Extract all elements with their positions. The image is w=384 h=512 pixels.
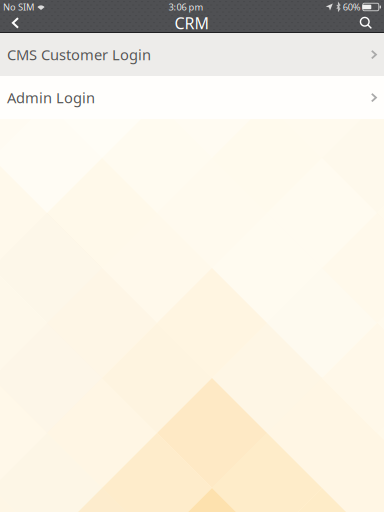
staticText: 3:06 pm xyxy=(168,1,203,13)
staticText: CRM xyxy=(174,12,209,34)
button[interactable]: Search xyxy=(348,14,384,32)
staticText: Admin Login xyxy=(7,88,95,107)
button[interactable]: Back xyxy=(0,14,31,32)
staticText: No SIM xyxy=(3,1,34,13)
button[interactable]: Admin Login xyxy=(0,76,384,119)
button[interactable]: CMS Customer Login xyxy=(0,33,384,76)
staticText: 60% xyxy=(343,1,361,13)
staticText: CMS Customer Login xyxy=(7,45,151,64)
